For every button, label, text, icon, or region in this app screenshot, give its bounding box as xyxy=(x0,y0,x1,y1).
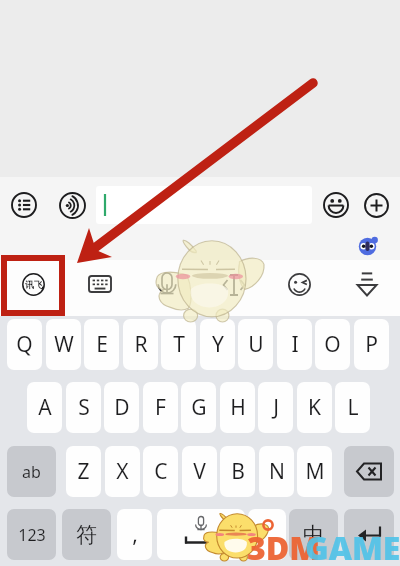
staticText: 123 xyxy=(18,524,46,546)
button[interactable] xyxy=(248,509,286,560)
button[interactable]: X xyxy=(105,446,140,497)
button[interactable]: U xyxy=(238,319,273,370)
staticText: D xyxy=(114,393,130,422)
button[interactable] xyxy=(96,186,312,224)
staticText: ab xyxy=(22,461,41,483)
staticText: K xyxy=(308,393,321,422)
staticText: Z xyxy=(77,457,90,486)
staticText: M xyxy=(305,457,325,486)
staticText: X xyxy=(116,457,129,486)
button[interactable]: Hide keyboard xyxy=(356,272,378,297)
button[interactable]: Stickers xyxy=(288,273,311,296)
button[interactable]: Candidates list xyxy=(11,192,37,218)
staticText: G xyxy=(191,393,207,422)
staticText: 3DM xyxy=(247,526,321,566)
staticText: V xyxy=(193,457,206,486)
staticText: Q xyxy=(16,330,33,359)
button[interactable]: Input method xyxy=(22,273,45,296)
button[interactable]: 中 xyxy=(289,509,338,560)
button[interactable]: J xyxy=(258,382,293,433)
button[interactable]: L xyxy=(335,382,370,433)
button[interactable]: E xyxy=(84,319,119,370)
staticText: P xyxy=(365,330,378,359)
staticText: , xyxy=(132,520,138,549)
button[interactable]: Z xyxy=(66,446,101,497)
button[interactable]: W xyxy=(46,319,81,370)
button[interactable]: R xyxy=(123,319,158,370)
button[interactable]: F xyxy=(143,382,178,433)
button[interactable]: G xyxy=(181,382,216,433)
button[interactable]: Voice input xyxy=(156,272,178,297)
button[interactable]: P xyxy=(354,319,389,370)
staticText: I xyxy=(291,330,299,359)
staticText: L xyxy=(347,393,359,422)
staticText: U xyxy=(248,330,264,359)
button[interactable]: H xyxy=(220,382,255,433)
staticText: Y xyxy=(212,330,224,359)
button[interactable] xyxy=(157,509,245,560)
button[interactable]: O xyxy=(315,319,350,370)
staticText: W xyxy=(54,330,74,359)
staticText: R xyxy=(134,330,148,359)
button[interactable]: N xyxy=(259,446,294,497)
button[interactable]: More xyxy=(364,193,389,218)
staticText: T xyxy=(173,330,185,359)
button[interactable]: A xyxy=(27,382,62,433)
button[interactable]: M xyxy=(297,446,332,497)
staticText: N xyxy=(269,457,285,486)
button[interactable]: Move cursor xyxy=(222,273,246,297)
button[interactable]: K xyxy=(297,382,332,433)
staticText: E xyxy=(96,330,108,359)
staticText: H xyxy=(230,393,246,422)
button[interactable]: V xyxy=(182,446,217,497)
button[interactable]: Keyboard layout xyxy=(88,275,112,293)
staticText: J xyxy=(273,393,279,422)
staticText: GAME xyxy=(305,526,400,566)
button[interactable] xyxy=(344,509,394,560)
button[interactable]: Emoji xyxy=(323,192,349,218)
button[interactable]: I xyxy=(277,319,312,370)
button[interactable]: Y xyxy=(200,319,235,370)
button[interactable]: , xyxy=(117,509,152,560)
button[interactable]: 符 xyxy=(62,509,111,560)
button[interactable]: B xyxy=(220,446,255,497)
staticText: C xyxy=(154,457,168,486)
button[interactable]: C xyxy=(143,446,178,497)
button[interactable]: 123 xyxy=(7,509,56,560)
button[interactable]: T xyxy=(161,319,196,370)
staticText: 讯飞 xyxy=(25,279,43,290)
staticText: 中 xyxy=(303,522,324,548)
staticText: O xyxy=(324,330,341,359)
button[interactable]: Voice xyxy=(59,192,86,219)
button[interactable]: ab xyxy=(7,446,56,497)
staticText: S xyxy=(78,393,90,422)
button[interactable]: Q xyxy=(7,319,42,370)
staticText: A xyxy=(38,393,52,422)
button[interactable]: S xyxy=(66,382,101,433)
staticText: B xyxy=(231,457,245,486)
button[interactable]: D xyxy=(104,382,139,433)
staticText: 符 xyxy=(76,522,97,548)
staticText: F xyxy=(155,393,166,422)
button[interactable] xyxy=(344,446,394,497)
